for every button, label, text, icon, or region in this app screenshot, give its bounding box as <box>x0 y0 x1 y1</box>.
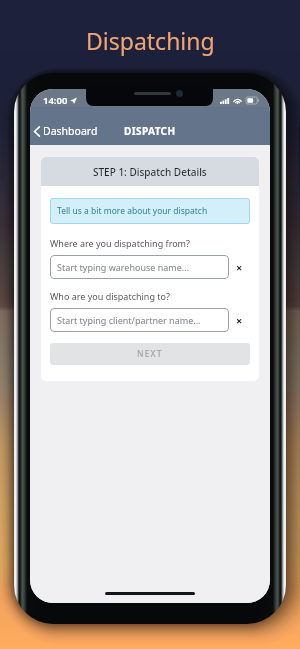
staticText: STEP 1: Dispatch Details <box>93 165 207 179</box>
button[interactable]: NEXT <box>50 343 250 365</box>
staticText: × <box>236 313 243 328</box>
button[interactable]: Clear <box>229 255 250 279</box>
button[interactable]: Clear <box>229 308 250 332</box>
staticText: × <box>236 260 243 275</box>
staticText: 14:00 <box>43 94 68 107</box>
staticText: Start typing client/partner name... <box>57 314 201 326</box>
staticText: Who are you dispatching to? <box>50 290 170 302</box>
staticText: Dispatching <box>86 25 215 56</box>
staticText: DISPATCH <box>124 124 176 138</box>
button[interactable]: Dashboard <box>30 120 106 142</box>
staticText: Start typing warehouse name... <box>57 261 190 273</box>
staticText: Where are you dispatching from? <box>50 237 190 249</box>
button[interactable]: Start typing client/partner name... <box>50 308 229 332</box>
button[interactable]: Start typing warehouse name... <box>50 255 229 279</box>
staticText: NEXT <box>137 348 163 360</box>
staticText: Tell us a bit more about your dispatch <box>57 205 208 217</box>
staticText: Dashboard <box>43 124 98 138</box>
